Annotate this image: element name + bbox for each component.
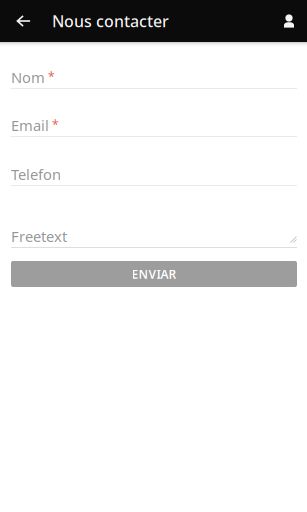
staticText: Telefon xyxy=(11,164,61,184)
button[interactable]: Account xyxy=(265,0,307,42)
staticText: Freetext xyxy=(11,226,67,246)
staticText: * xyxy=(45,69,55,84)
staticText: * xyxy=(49,117,59,132)
button[interactable]: Back xyxy=(0,0,36,42)
staticText: ENVIAR xyxy=(131,266,176,282)
staticText: Email xyxy=(11,115,49,135)
staticText: Nom xyxy=(11,67,45,87)
button[interactable]: Nom xyxy=(11,47,297,89)
button[interactable]: Freetext xyxy=(11,186,297,248)
button[interactable]: ENVIAR xyxy=(11,261,297,287)
button[interactable]: Telefon xyxy=(11,137,297,186)
button[interactable]: Email xyxy=(11,89,297,137)
staticText: Nous contacter xyxy=(52,10,169,32)
